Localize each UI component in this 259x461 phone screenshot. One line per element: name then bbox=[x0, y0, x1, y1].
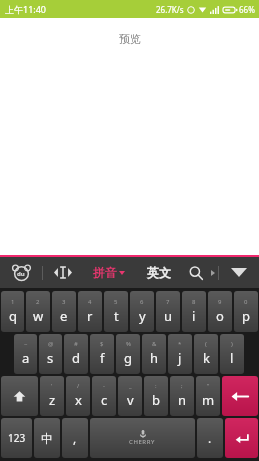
button[interactable]: 6 bbox=[130, 291, 154, 332]
staticText: 8 bbox=[192, 298, 196, 306]
staticText: t bbox=[114, 307, 119, 325]
staticText: h bbox=[150, 349, 159, 367]
staticText: e bbox=[60, 307, 68, 325]
button[interactable]: * bbox=[168, 334, 192, 374]
staticText: ~ bbox=[24, 340, 28, 348]
staticText: f bbox=[100, 349, 105, 367]
button[interactable]: 9 bbox=[208, 291, 232, 332]
staticText: ) bbox=[231, 340, 233, 348]
button[interactable]: 2 bbox=[26, 291, 50, 332]
button[interactable]: Baidu input logo bbox=[0, 257, 42, 288]
staticText: n bbox=[178, 391, 187, 409]
button[interactable]: & bbox=[142, 334, 166, 374]
button[interactable]: @ bbox=[39, 334, 62, 374]
button[interactable]: : bbox=[144, 376, 168, 416]
staticText: 7 bbox=[166, 298, 170, 306]
staticText: 0 bbox=[244, 298, 248, 306]
staticText: l bbox=[230, 349, 234, 367]
button[interactable]: 中 bbox=[34, 418, 60, 458]
staticText: 6 bbox=[140, 298, 144, 306]
staticText: . bbox=[208, 430, 212, 446]
button[interactable]: / bbox=[66, 376, 90, 416]
button[interactable]: 5 bbox=[104, 291, 128, 332]
button[interactable]: % bbox=[116, 334, 140, 374]
staticText: CHERRY bbox=[129, 438, 156, 446]
staticText: ' bbox=[51, 382, 53, 390]
button[interactable]: . bbox=[197, 418, 223, 458]
staticText: $ bbox=[100, 340, 104, 348]
staticText: j bbox=[178, 349, 182, 367]
staticText: u bbox=[164, 307, 173, 325]
staticText: g bbox=[124, 349, 132, 367]
staticText: 预览 bbox=[119, 32, 141, 46]
staticText: 66% bbox=[239, 4, 255, 15]
staticText: i bbox=[192, 307, 196, 325]
staticText: : bbox=[155, 382, 157, 390]
staticText: 1 bbox=[11, 298, 15, 306]
staticText: a bbox=[22, 349, 30, 367]
button[interactable]: 8 bbox=[182, 291, 206, 332]
staticText: r bbox=[87, 307, 93, 325]
staticText: 3 bbox=[62, 298, 66, 306]
staticText: 5 bbox=[114, 298, 118, 306]
button[interactable]: $ bbox=[90, 334, 114, 374]
button[interactable]: Space bbox=[90, 418, 195, 458]
button[interactable]: _ bbox=[118, 376, 142, 416]
button[interactable]: Hide keyboard bbox=[219, 257, 259, 288]
button[interactable]: ' bbox=[40, 376, 64, 416]
staticText: s bbox=[47, 349, 54, 367]
staticText: w bbox=[33, 307, 44, 325]
button[interactable]: 3 bbox=[52, 291, 76, 332]
button[interactable]: 123 bbox=[1, 418, 32, 458]
staticText: x bbox=[75, 391, 82, 409]
staticText: - bbox=[103, 382, 105, 390]
button[interactable]: 拼音 bbox=[89, 257, 129, 288]
button[interactable]: ( bbox=[194, 334, 218, 374]
button[interactable]: Enter bbox=[225, 418, 258, 458]
staticText: @ bbox=[48, 340, 54, 348]
staticText: d bbox=[72, 349, 80, 367]
button[interactable]: 0 bbox=[234, 291, 258, 332]
button[interactable]: ~ bbox=[14, 334, 37, 374]
staticText: 上午11:40 bbox=[5, 3, 47, 15]
staticText: m bbox=[202, 391, 215, 409]
staticText: & bbox=[152, 340, 157, 348]
button[interactable]: 7 bbox=[156, 291, 180, 332]
staticText: " bbox=[207, 382, 210, 390]
button[interactable]: 英文 bbox=[143, 257, 175, 288]
button[interactable]: Move cursor bbox=[43, 257, 83, 288]
staticText: p bbox=[242, 307, 250, 325]
staticText: , bbox=[73, 430, 77, 446]
staticText: 4 bbox=[88, 298, 92, 306]
staticText: % bbox=[126, 340, 131, 348]
staticText: 拼音 bbox=[93, 265, 117, 280]
button[interactable]: 1 bbox=[1, 291, 24, 332]
button[interactable]: # bbox=[64, 334, 88, 374]
staticText: z bbox=[49, 391, 56, 409]
staticText: y bbox=[139, 307, 146, 325]
staticText: 2 bbox=[36, 298, 40, 306]
button[interactable]: Search bbox=[181, 257, 211, 288]
staticText: 英文 bbox=[147, 265, 171, 280]
staticText: # bbox=[74, 340, 78, 348]
staticText: * bbox=[178, 340, 182, 348]
button[interactable]: ; bbox=[170, 376, 194, 416]
staticText: _ bbox=[129, 382, 132, 390]
staticText: du bbox=[17, 270, 25, 278]
staticText: ; bbox=[181, 382, 183, 390]
button[interactable]: Backspace bbox=[222, 376, 258, 416]
staticText: 中 bbox=[41, 431, 53, 446]
staticText: 9 bbox=[218, 298, 222, 306]
staticText: o bbox=[216, 307, 224, 325]
button[interactable]: Shift bbox=[1, 376, 38, 416]
staticText: q bbox=[9, 307, 17, 325]
button[interactable]: ) bbox=[220, 334, 244, 374]
staticText: k bbox=[203, 349, 210, 367]
button[interactable]: , bbox=[62, 418, 88, 458]
staticText: 123 bbox=[8, 431, 26, 445]
button[interactable]: 4 bbox=[78, 291, 102, 332]
staticText: / bbox=[77, 382, 80, 390]
button[interactable]: - bbox=[92, 376, 116, 416]
staticText: c bbox=[101, 391, 108, 409]
button[interactable]: " bbox=[196, 376, 220, 416]
